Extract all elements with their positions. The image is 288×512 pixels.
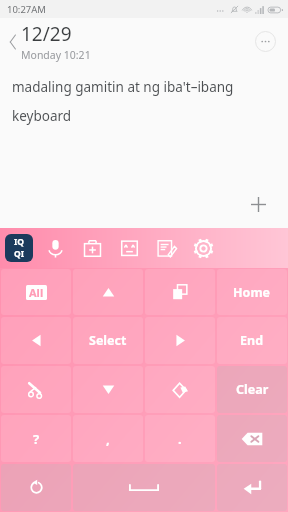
button[interactable]: , bbox=[73, 415, 143, 462]
staticText: IQ bbox=[14, 236, 25, 248]
button[interactable]: ? bbox=[1, 415, 71, 462]
button[interactable]: Toolbox bbox=[77, 233, 107, 263]
staticText: madaling gamitin at ng iba't–ibang bbox=[12, 78, 234, 96]
button[interactable]: Move up bbox=[73, 269, 143, 315]
staticText: , bbox=[106, 430, 110, 448]
button[interactable]: Voice input bbox=[40, 233, 70, 263]
button[interactable]: Move left bbox=[1, 317, 71, 364]
button[interactable]: IQQI keyboard bbox=[5, 234, 33, 262]
staticText: End bbox=[240, 332, 264, 349]
button[interactable]: Space bbox=[73, 464, 215, 511]
staticText: Monday 10:21 bbox=[21, 48, 91, 62]
staticText: QI bbox=[14, 248, 25, 260]
staticText: ? bbox=[33, 430, 40, 448]
button[interactable]: Back bbox=[4, 26, 21, 58]
button[interactable]: . bbox=[145, 415, 215, 462]
button[interactable]: Paste bbox=[145, 366, 215, 413]
button[interactable]: Select bbox=[73, 317, 143, 364]
button[interactable]: End bbox=[217, 317, 287, 364]
button[interactable]: Backspace bbox=[217, 415, 287, 462]
staticText: 10:27AM bbox=[7, 3, 46, 16]
button[interactable]: Undo bbox=[1, 464, 71, 511]
staticText: 12/29 bbox=[21, 21, 72, 47]
button[interactable]: Add bbox=[245, 191, 271, 217]
button[interactable]: Move right bbox=[145, 317, 215, 364]
button[interactable]: Copy bbox=[145, 269, 215, 315]
button[interactable]: Cut bbox=[1, 366, 71, 413]
button[interactable]: Move down bbox=[73, 366, 143, 413]
staticText: Home bbox=[233, 284, 271, 301]
button[interactable]: Clear bbox=[217, 366, 287, 413]
staticText: All bbox=[29, 285, 44, 300]
staticText: Select bbox=[89, 332, 127, 349]
button[interactable]: Select all bbox=[1, 269, 71, 315]
button[interactable]: Enter bbox=[217, 464, 287, 511]
button[interactable]: Emoji bbox=[114, 233, 144, 263]
button[interactable]: More options bbox=[253, 29, 277, 53]
staticText: . bbox=[178, 430, 182, 448]
button[interactable]: Settings bbox=[188, 233, 218, 263]
staticText: Clear bbox=[236, 381, 269, 398]
button[interactable]: Home bbox=[217, 269, 287, 315]
button[interactable]: Notes bbox=[151, 233, 181, 263]
staticText: keyboard bbox=[12, 107, 72, 125]
